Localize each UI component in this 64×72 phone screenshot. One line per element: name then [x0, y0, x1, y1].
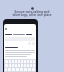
staticText: Secure note-taking and short logs, all i… — [1, 10, 63, 17]
